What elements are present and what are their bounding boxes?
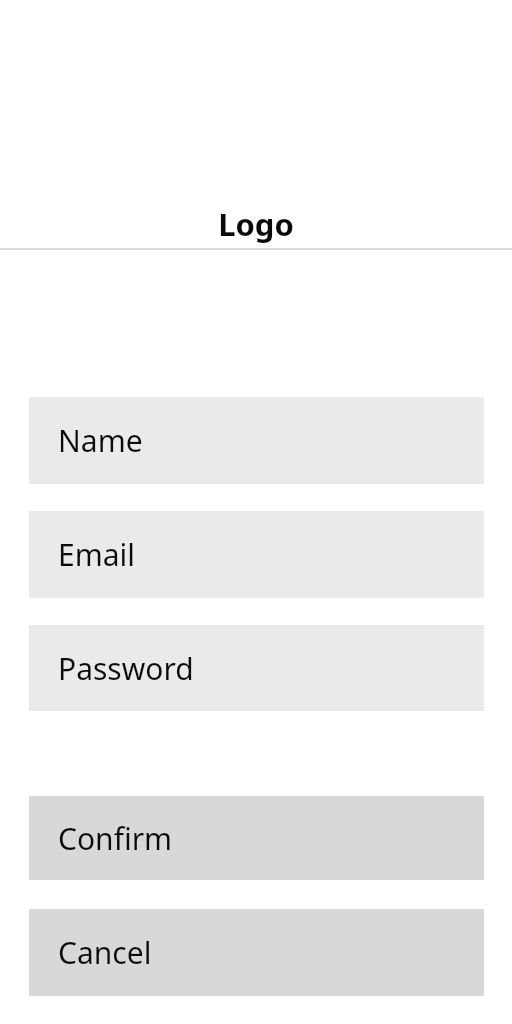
button[interactable]: Confirm bbox=[29, 796, 484, 880]
button[interactable]: Name bbox=[29, 397, 484, 484]
staticText: Password bbox=[58, 648, 194, 689]
button[interactable]: Email bbox=[29, 511, 484, 598]
button[interactable]: Password bbox=[29, 625, 484, 711]
staticText: Confirm bbox=[58, 818, 173, 859]
staticText: Cancel bbox=[58, 932, 152, 973]
staticText: Name bbox=[58, 420, 143, 461]
staticText: Email bbox=[58, 534, 136, 575]
button[interactable]: Cancel bbox=[29, 909, 484, 996]
staticText: Logo bbox=[218, 203, 294, 245]
